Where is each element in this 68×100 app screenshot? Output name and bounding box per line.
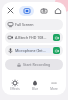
staticText: Full Screen <box>15 22 34 27</box>
staticText: Blur <box>32 87 38 91</box>
button[interactable]: More <box>44 79 63 92</box>
button[interactable]: Start Recording <box>5 59 63 70</box>
staticText: Microphone (Int… <box>15 48 46 53</box>
button[interactable]: Home <box>52 5 63 16</box>
button[interactable]: Blur <box>25 79 44 92</box>
staticText: Effects <box>10 87 20 91</box>
button[interactable]: Close <box>5 5 16 16</box>
button[interactable]: Screen share <box>19 6 34 16</box>
button[interactable]: Effects <box>5 79 24 92</box>
button[interactable]: Active <box>53 34 60 41</box>
staticText: A.Btech FHD 108… <box>15 35 47 40</box>
button[interactable]: Full Screen <box>5 19 63 30</box>
button[interactable]: A.Btech FHD 108… <box>5 32 63 43</box>
staticText: More <box>50 87 58 91</box>
button[interactable]: Active <box>53 47 60 54</box>
button[interactable]: Microphone (Int… <box>5 45 63 56</box>
button[interactable]: Camera <box>38 5 49 16</box>
staticText: Start Recording <box>23 62 51 67</box>
